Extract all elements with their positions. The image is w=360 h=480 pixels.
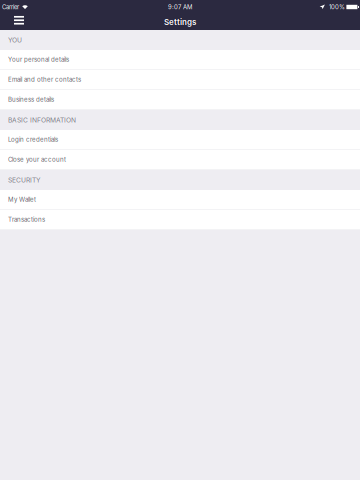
staticText: SECURITY <box>8 176 41 184</box>
button[interactable]: Business details <box>0 90 360 110</box>
button[interactable]: Email and other contacts <box>0 70 360 90</box>
button[interactable]: Transactions <box>0 210 360 230</box>
staticText: Login credentials <box>8 136 58 143</box>
staticText: 100% <box>329 3 345 11</box>
button[interactable]: Your personal details <box>0 50 360 70</box>
staticText: BASIC INFORMATION <box>8 116 76 124</box>
staticText: Close your account <box>8 156 66 163</box>
button[interactable]: Menu <box>14 16 27 28</box>
button[interactable]: My Wallet <box>0 190 360 210</box>
button[interactable]: Close your account <box>0 150 360 170</box>
staticText: Transactions <box>8 216 45 223</box>
staticText: My Wallet <box>8 196 36 203</box>
button[interactable]: Login credentials <box>0 130 360 150</box>
staticText: Settings <box>164 17 196 27</box>
staticText: YOU <box>8 36 22 44</box>
staticText: Carrier <box>2 3 19 11</box>
staticText: 9:07 AM <box>168 3 192 11</box>
staticText: Your personal details <box>8 56 69 63</box>
staticText: Email and other contacts <box>8 76 81 83</box>
staticText: Business details <box>8 96 54 103</box>
